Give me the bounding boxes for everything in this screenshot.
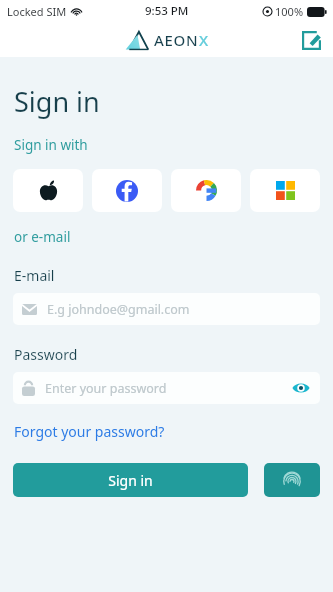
staticText: 100% xyxy=(275,4,304,19)
staticText: AEON xyxy=(154,30,199,50)
staticText: Locked SIM xyxy=(7,4,67,19)
staticText: E-mail xyxy=(14,266,55,285)
staticText: or e-mail xyxy=(14,228,71,246)
staticText: Sign in with xyxy=(14,136,88,154)
button[interactable]: E-mail field xyxy=(13,293,320,325)
staticText: 9:53 PM xyxy=(145,3,189,19)
button[interactable]: Show password xyxy=(291,378,311,398)
button[interactable]: Sign in with Apple xyxy=(13,169,83,212)
staticText: E.g johndoe@gmail.com xyxy=(47,301,311,318)
button[interactable]: Sign in with Microsoft xyxy=(250,169,320,212)
button[interactable]: Sign in with fingerprint xyxy=(264,463,320,497)
staticText: X xyxy=(199,30,209,50)
button[interactable]: Password field xyxy=(13,372,320,404)
button[interactable]: Sign in with Facebook xyxy=(92,169,162,212)
staticText: Enter your password xyxy=(45,380,291,397)
button[interactable]: Compose xyxy=(298,27,324,53)
button[interactable]: Sign in with Google xyxy=(171,169,241,212)
button[interactable]: Forgot your password? xyxy=(14,422,165,441)
staticText: Password xyxy=(14,345,78,364)
staticText: Sign in xyxy=(108,471,153,490)
staticText: Sign in xyxy=(14,83,100,120)
button[interactable]: Sign in xyxy=(13,463,248,497)
